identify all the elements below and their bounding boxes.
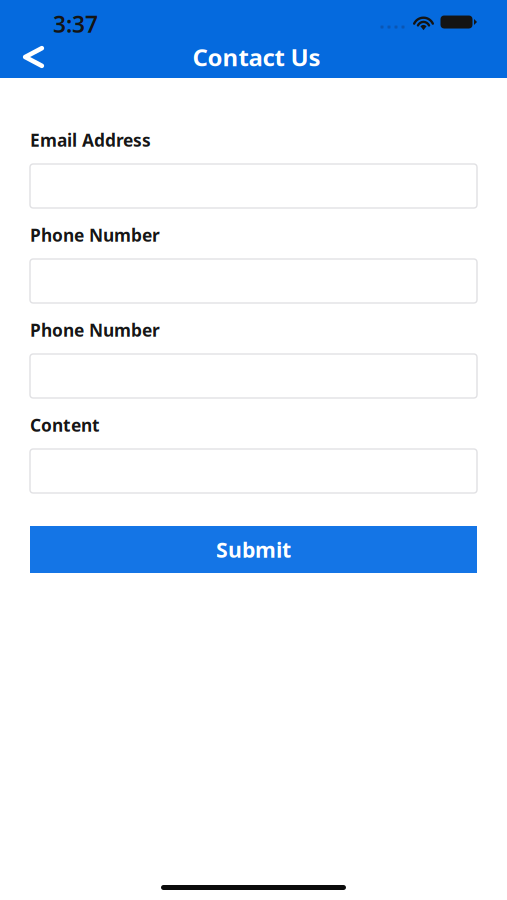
- button[interactable]: Email Address: [30, 164, 477, 208]
- button[interactable]: Phone Number: [30, 259, 477, 303]
- staticText: Content: [30, 413, 100, 436]
- button[interactable]: Phone Number: [30, 354, 477, 398]
- staticText: Submit: [216, 535, 291, 564]
- button[interactable]: Submit: [30, 526, 477, 573]
- staticText: 3:37: [53, 9, 98, 39]
- staticText: Phone Number: [30, 223, 160, 246]
- staticText: Phone Number: [30, 318, 160, 341]
- staticText: Email Address: [30, 128, 151, 151]
- staticText: Contact Us: [192, 41, 320, 73]
- button[interactable]: Back: [0, 40, 60, 78]
- button[interactable]: Content: [30, 449, 477, 493]
